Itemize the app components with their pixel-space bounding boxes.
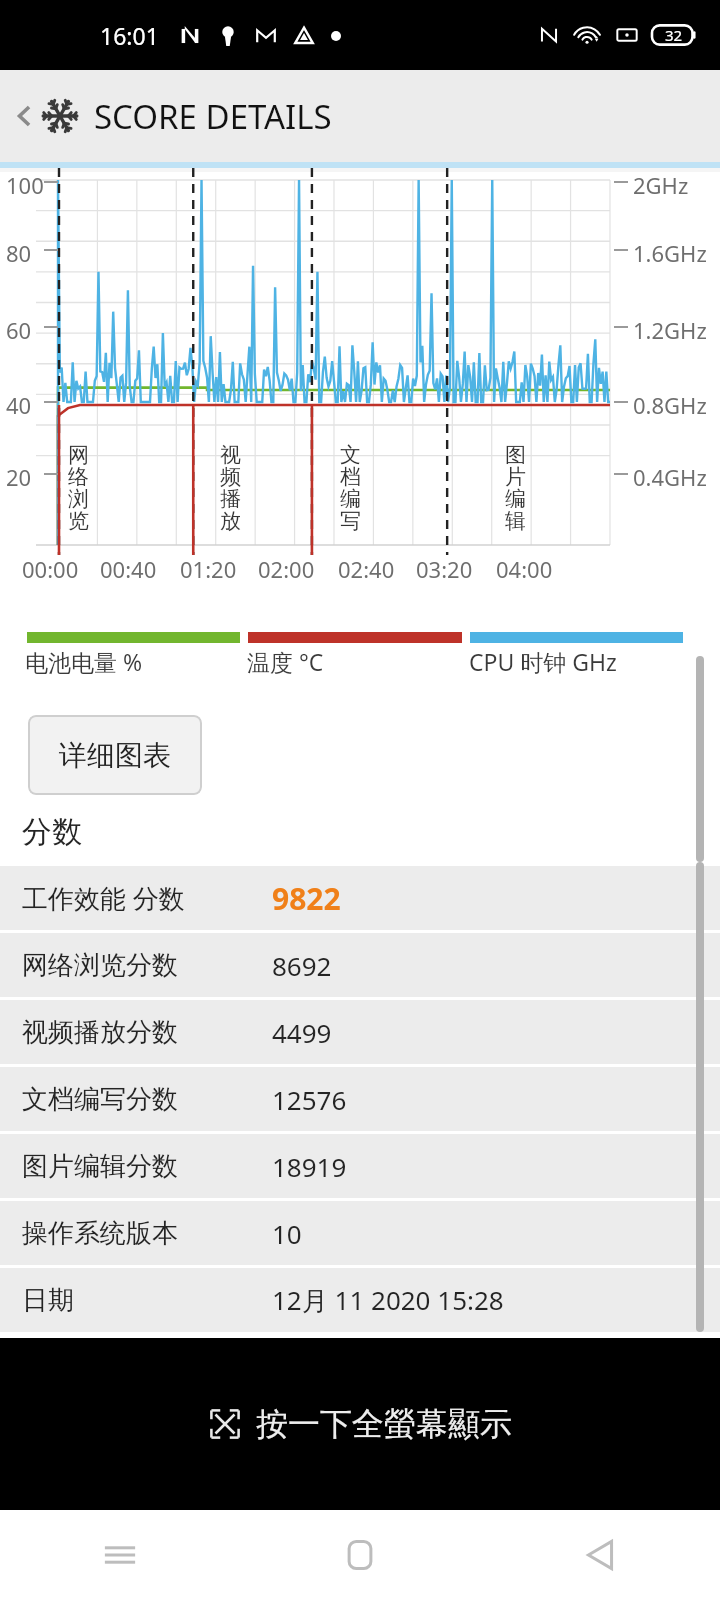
staticText: 按一下全螢幕顯示 xyxy=(256,1404,512,1444)
button[interactable]: 工作效能 分数 xyxy=(0,866,720,930)
staticText: 操作系统版本 xyxy=(22,1217,272,1250)
staticText: 日期 xyxy=(22,1284,272,1317)
button[interactable]: 文档编写分数 xyxy=(0,1067,720,1131)
staticText: 文档编写分数 xyxy=(22,1083,272,1116)
staticText: 02:40 xyxy=(338,554,395,584)
staticText: 60 xyxy=(6,315,32,345)
staticText: SCORE DETAILS xyxy=(94,94,332,139)
staticText: 网络浏览分数 xyxy=(22,949,272,982)
staticText: 1.6GHz xyxy=(633,238,707,268)
staticText: 18919 xyxy=(272,1149,347,1184)
staticText: 视频播放 xyxy=(220,442,246,535)
staticText: 00:40 xyxy=(100,554,157,584)
button[interactable]: Home xyxy=(320,1515,400,1595)
staticText: 40 xyxy=(6,390,32,420)
button[interactable]: 按一下全螢幕顯示 xyxy=(0,1338,720,1510)
staticText: 4499 xyxy=(272,1015,332,1050)
staticText: 03:20 xyxy=(416,554,473,584)
staticText: CPU 时钟 GHz xyxy=(469,646,617,677)
staticText: 00:00 xyxy=(22,554,79,584)
staticText: 80 xyxy=(6,238,32,268)
staticText: 0.4GHz xyxy=(633,462,707,492)
button[interactable]: 详细图表 xyxy=(28,715,202,795)
staticText: 网络浏览 xyxy=(68,442,94,535)
staticText: 20 xyxy=(6,462,32,492)
button[interactable]: 网络浏览分数 xyxy=(0,933,720,997)
staticText: 视频播放分数 xyxy=(22,1016,272,1049)
staticText: 32 xyxy=(665,25,683,45)
button[interactable]: 操作系统版本 xyxy=(0,1201,720,1265)
staticText: 04:00 xyxy=(496,554,553,584)
staticText: 图片编辑 xyxy=(505,442,531,535)
button[interactable]: 日期 xyxy=(0,1268,720,1332)
staticText: 工作效能 分数 xyxy=(22,880,272,916)
staticText: 0.8GHz xyxy=(633,390,707,420)
button[interactable]: Recent apps xyxy=(80,1515,160,1595)
staticText: 电池电量 % xyxy=(25,646,143,677)
staticText: 分数 xyxy=(22,813,82,851)
staticText: 2GHz xyxy=(633,170,689,200)
staticText: 图片编辑分数 xyxy=(22,1150,272,1183)
staticText: 100 xyxy=(6,170,44,200)
staticText: 12576 xyxy=(272,1082,347,1117)
staticText: 02:00 xyxy=(258,554,315,584)
staticText: 温度 °C xyxy=(247,646,324,677)
button[interactable]: 图片编辑分数 xyxy=(0,1134,720,1198)
staticText: 10 xyxy=(272,1216,302,1251)
staticText: 16:01 xyxy=(100,20,159,51)
button[interactable]: Back xyxy=(0,70,720,162)
staticText: 9822 xyxy=(272,878,341,919)
button[interactable]: Back xyxy=(560,1515,640,1595)
staticText: 8692 xyxy=(272,948,332,983)
staticText: 1.2GHz xyxy=(633,315,707,345)
button[interactable]: 视频播放分数 xyxy=(0,1000,720,1064)
staticText: 01:20 xyxy=(180,554,237,584)
staticText: 12月 11 2020 15:28 xyxy=(272,1282,504,1318)
staticText: 文档编写 xyxy=(340,442,366,535)
other: Back xyxy=(10,102,38,130)
staticText: 详细图表 xyxy=(59,738,171,773)
